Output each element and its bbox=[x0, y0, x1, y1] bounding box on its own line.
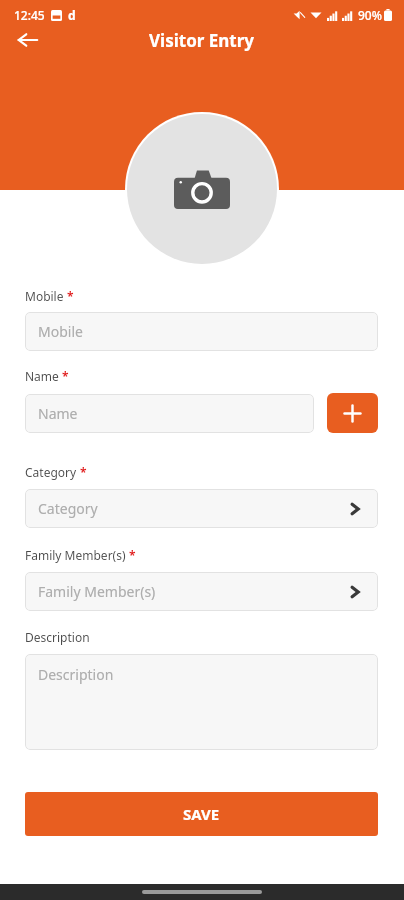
button[interactable]: Category bbox=[25, 489, 378, 528]
button[interactable]: SAVE bbox=[25, 792, 378, 836]
button[interactable]: Add bbox=[327, 393, 378, 433]
button[interactable]: Take photo bbox=[127, 114, 277, 264]
staticText: Description bbox=[38, 665, 114, 684]
staticText: Mobile bbox=[25, 288, 64, 304]
button[interactable]: Name bbox=[25, 394, 314, 433]
staticText: Name bbox=[25, 368, 59, 384]
staticText: Category bbox=[25, 464, 77, 480]
staticText: d bbox=[68, 7, 76, 23]
staticText: Family Member(s) bbox=[25, 547, 126, 563]
staticText: * bbox=[62, 368, 69, 384]
button[interactable]: Mobile bbox=[25, 312, 378, 351]
staticText: 12:45 bbox=[14, 7, 45, 23]
staticText: * bbox=[80, 464, 87, 480]
staticText: 90% bbox=[358, 7, 382, 23]
staticText: Category bbox=[38, 499, 98, 518]
staticText: * bbox=[129, 547, 136, 563]
staticText: Description bbox=[25, 629, 90, 645]
staticText: Family Member(s) bbox=[38, 582, 156, 601]
button[interactable]: Family Member(s) bbox=[25, 572, 378, 611]
staticText: Visitor Entry bbox=[149, 29, 255, 52]
staticText: Name bbox=[38, 404, 78, 423]
button[interactable]: Description bbox=[25, 654, 378, 750]
staticText: SAVE bbox=[183, 804, 220, 824]
staticText: * bbox=[67, 288, 74, 304]
staticText: Mobile bbox=[38, 322, 83, 341]
button[interactable]: Back bbox=[8, 20, 48, 60]
